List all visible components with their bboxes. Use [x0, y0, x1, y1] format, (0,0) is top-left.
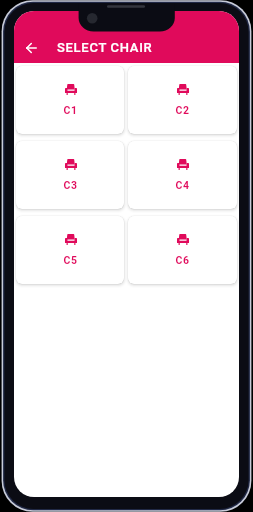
button[interactable]: C4 — [128, 141, 237, 209]
staticText: SELECT CHAIR — [57, 40, 153, 55]
button[interactable]: C6 — [128, 216, 237, 284]
staticText: C3 — [63, 179, 78, 191]
button[interactable]: C2 — [128, 66, 237, 134]
staticText: C6 — [175, 254, 190, 266]
staticText: C5 — [63, 254, 78, 266]
button[interactable]: C5 — [16, 216, 124, 284]
button[interactable]: Back — [17, 34, 45, 62]
button[interactable]: C3 — [16, 141, 124, 209]
button[interactable]: C1 — [16, 66, 124, 134]
staticText: C4 — [175, 179, 190, 191]
staticText: C2 — [175, 104, 190, 116]
staticText: C1 — [63, 104, 78, 116]
